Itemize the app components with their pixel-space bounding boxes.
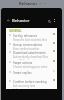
button[interactable]: Sort by relevance <box>6 33 57 42</box>
staticText: GENERAL <box>9 29 22 33</box>
staticText: Sort by relevance <box>13 34 38 38</box>
button[interactable]: Confirm before sending <box>6 79 57 89</box>
button[interactable]: More options <box>52 19 56 23</box>
button[interactable]: Search <box>47 19 51 23</box>
button[interactable]: Group conversations <box>6 42 57 50</box>
staticText: Swipe actions <box>13 61 33 65</box>
staticText: Automatically download files <box>13 55 48 59</box>
button[interactable]: Swipe actions <box>6 60 57 70</box>
staticText: Behavior <box>19 1 38 7</box>
staticText: Download attachments <box>13 51 46 55</box>
button[interactable]: Navigate up <box>6 18 11 23</box>
staticText: Choose what happens when <box>13 65 48 69</box>
staticText: Smart replies <box>13 71 32 75</box>
staticText: Behavior <box>12 18 30 24</box>
staticText: Show the best matches first <box>13 38 47 42</box>
button[interactable]: Smart replies <box>6 70 57 79</box>
button[interactable]: Navigate up <box>6 16 57 25</box>
button[interactable]: Download attachments <box>6 50 57 60</box>
staticText: Confirm before sending <box>13 80 47 84</box>
staticText: Ask me every time <box>13 84 36 88</box>
staticText: before a message goes out <box>13 88 47 89</box>
staticText: over Wi-Fi when charging <box>13 59 44 60</box>
staticText: Keep replies together <box>13 47 40 50</box>
staticText: Group conversations <box>13 43 43 47</box>
staticText: ✓ • • <box>39 2 46 6</box>
